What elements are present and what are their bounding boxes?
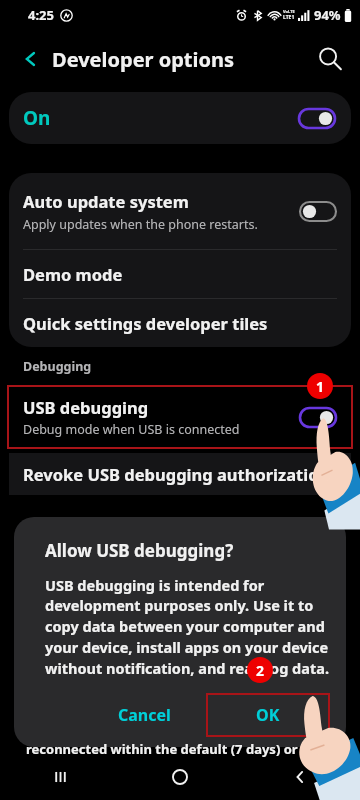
button[interactable]: USB debugging	[7, 385, 353, 449]
staticText: reconnected within the default (7 days) …	[26, 740, 298, 758]
staticText: Debug mode when USB is connected	[23, 421, 240, 438]
button[interactable]: Auto update system	[9, 173, 351, 249]
staticText: 4:25	[28, 6, 54, 24]
staticText: Allow USB debugging?	[45, 539, 234, 562]
button[interactable]: Quick settings developer tiles	[9, 299, 351, 347]
staticText: USB debugging	[23, 396, 149, 418]
staticText: 1	[316, 377, 325, 396]
staticText: Apply updates when the phone restarts.	[23, 216, 258, 233]
button[interactable]: Back	[240, 754, 360, 800]
staticText: Developer options	[52, 46, 235, 73]
staticText: Auto update system	[23, 190, 189, 212]
staticText: Cancel	[118, 704, 171, 726]
staticText: Debugging	[23, 358, 92, 375]
staticText: Quick settings developer tiles	[23, 312, 268, 334]
staticText: 94%	[314, 6, 341, 24]
button[interactable]: On	[9, 92, 351, 144]
staticText: OK	[256, 704, 280, 726]
staticText: LTE1	[283, 14, 295, 21]
button[interactable]: Search	[314, 43, 346, 75]
staticText: USB debugging is intended for developmen…	[45, 575, 330, 679]
button[interactable]: Back	[16, 44, 46, 74]
button[interactable]: Demo mode	[9, 250, 351, 298]
button[interactable]: Cancel	[83, 693, 206, 737]
button[interactable]: Home	[120, 754, 240, 800]
button[interactable]: OK	[206, 693, 330, 737]
staticText: Revoke USB debugging authorizations	[23, 463, 338, 485]
button[interactable]: Revoke USB debugging authorizations	[9, 453, 351, 495]
staticText: VoLTE	[283, 9, 295, 14]
staticText: On	[23, 105, 51, 131]
staticText: 2	[256, 661, 265, 680]
staticText: Demo mode	[23, 263, 123, 285]
button[interactable]: Recents	[0, 754, 120, 800]
